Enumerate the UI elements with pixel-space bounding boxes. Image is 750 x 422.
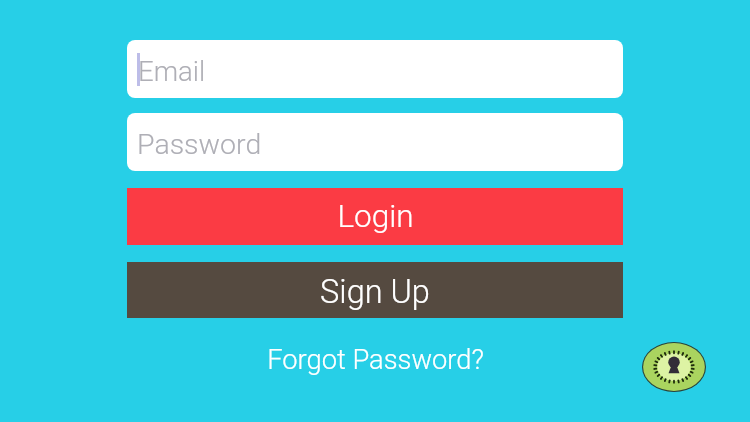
staticText: Email	[138, 55, 206, 87]
button[interactable]: Password	[127, 113, 623, 171]
button[interactable]: Login	[127, 188, 623, 245]
staticText: Login	[337, 198, 414, 235]
button[interactable]: App logo	[642, 342, 706, 392]
staticText: Sign Up	[320, 273, 430, 311]
staticText: Password	[137, 128, 262, 161]
button[interactable]: Sign Up	[127, 262, 623, 318]
button[interactable]: Email	[127, 40, 623, 98]
button[interactable]: Forgot Password?	[261, 341, 490, 379]
